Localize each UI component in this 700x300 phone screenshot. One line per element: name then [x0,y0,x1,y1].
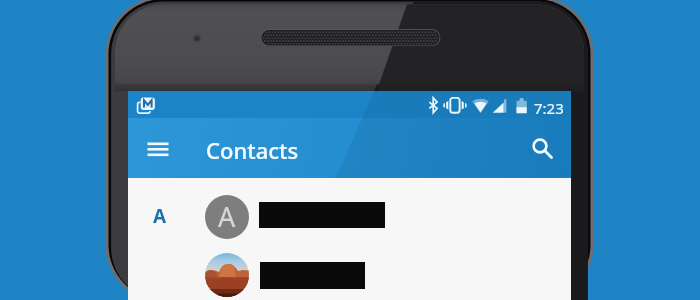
button[interactable]: Open navigation menu [136,121,180,165]
staticText: Contacts [206,135,299,165]
staticText: 7:23 [534,98,564,118]
button[interactable]: A [128,183,571,241]
button[interactable]: Search [518,127,562,171]
button[interactable] [128,241,571,299]
staticText: A [153,203,167,229]
staticText: A [218,198,236,235]
